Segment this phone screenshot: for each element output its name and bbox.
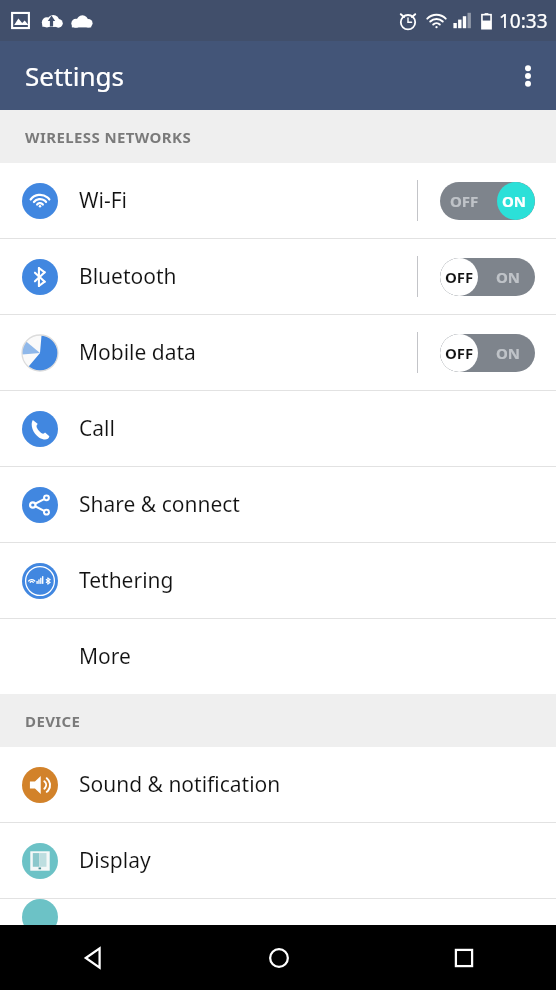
staticText: Settings [25, 58, 124, 93]
button[interactable] [0, 899, 556, 925]
staticText: ON [496, 267, 521, 287]
staticText: Bluetooth [79, 262, 417, 291]
button[interactable]: Display [0, 823, 556, 898]
button[interactable]: On [440, 182, 535, 220]
staticText: Call [79, 414, 556, 443]
staticText: ON [496, 343, 521, 363]
button[interactable]: Call [0, 391, 556, 466]
staticText: WIRELESS NETWORKS [25, 127, 192, 147]
button[interactable]: Share & connect [0, 467, 556, 542]
staticText: OFF [450, 191, 479, 211]
staticText: OFF [445, 267, 474, 287]
staticText: Share & connect [79, 490, 556, 519]
button[interactable]: Tethering [0, 543, 556, 618]
button[interactable]: Recent apps [371, 925, 556, 990]
staticText: Wi-Fi [79, 186, 417, 215]
button[interactable]: Sound & notification [0, 747, 556, 822]
staticText: More [79, 642, 556, 671]
button[interactable]: More [0, 619, 556, 694]
staticText: Tethering [79, 566, 556, 595]
staticText: Mobile data [79, 338, 417, 367]
staticText: ON [502, 191, 527, 211]
button[interactable]: Mobile data [0, 315, 556, 390]
staticText: DEVICE [25, 711, 81, 731]
button[interactable]: Bluetooth [0, 239, 556, 314]
button[interactable]: Home [186, 925, 371, 990]
button[interactable]: Off [440, 258, 535, 296]
staticText: Sound & notification [79, 770, 556, 799]
staticText: 10:33 [499, 8, 548, 34]
button[interactable]: Off [440, 334, 535, 372]
staticText: Display [79, 846, 556, 875]
button[interactable]: Back [0, 925, 186, 990]
button[interactable]: More options [500, 48, 556, 104]
button[interactable]: Wi-Fi [0, 163, 556, 238]
staticText: OFF [445, 343, 474, 363]
